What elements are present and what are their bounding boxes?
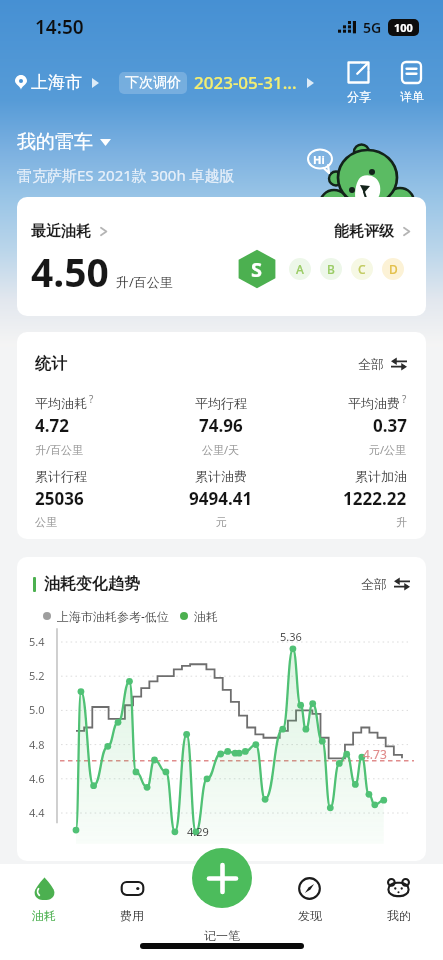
button[interactable]: 我的 xyxy=(354,875,443,925)
staticText: 4.8 xyxy=(29,737,45,752)
staticText: 5G xyxy=(363,18,382,37)
staticText: 0.37 xyxy=(373,414,407,437)
staticText: 元/公里 xyxy=(369,442,407,457)
staticText: S xyxy=(251,256,263,283)
staticText: 雷克萨斯ES 2021款 300h 卓越版 xyxy=(17,165,235,185)
button[interactable]: 最近油耗 xyxy=(17,197,426,316)
button[interactable]: 我的雷车 xyxy=(17,130,111,154)
button[interactable]: 发现 xyxy=(265,875,354,925)
staticText: 2023-05-31... xyxy=(194,71,297,94)
button[interactable]: 全部 xyxy=(361,576,410,592)
staticText: 记一笔 xyxy=(204,928,240,943)
staticText: 最近油耗 xyxy=(31,222,91,241)
staticText: 全部 xyxy=(361,576,387,592)
staticText: 4.29 xyxy=(187,824,209,839)
staticText: 下次调价 xyxy=(125,74,181,92)
staticText: 费用 xyxy=(120,908,144,923)
staticText: 统计 xyxy=(35,354,67,374)
staticText: 5.0 xyxy=(29,702,45,717)
staticText: 累计油费 xyxy=(195,468,247,484)
staticText: B xyxy=(327,261,335,277)
staticText: 25036 xyxy=(35,487,84,510)
staticText: D xyxy=(389,261,398,277)
staticText: 74.96 xyxy=(199,414,243,437)
staticText: 5.4 xyxy=(29,634,45,649)
button[interactable]: Details xyxy=(394,58,429,106)
staticText: 升/百公里 xyxy=(116,273,173,291)
button[interactable]: 油耗 xyxy=(0,875,88,925)
button[interactable]: Share xyxy=(341,58,376,106)
button[interactable]: 上海市 xyxy=(15,68,99,97)
staticText: Hi xyxy=(313,152,325,167)
staticText: 分享 xyxy=(347,89,371,104)
staticText: 累计行程 xyxy=(35,468,87,484)
staticText: 14:50 xyxy=(35,14,84,40)
staticText: 平均油费 xyxy=(348,395,400,411)
staticText: A xyxy=(296,261,304,277)
staticText: 平均行程 xyxy=(195,395,247,411)
staticText: 元 xyxy=(216,515,227,529)
button[interactable]: 费用 xyxy=(88,875,176,925)
staticText: 我的雷车 xyxy=(17,130,93,154)
staticText: 全部 xyxy=(358,356,384,372)
button[interactable]: Add record xyxy=(192,848,252,908)
staticText: 4.73 xyxy=(363,746,387,762)
staticText: 4.50 xyxy=(31,245,109,298)
button[interactable]: 下次调价 xyxy=(119,71,314,94)
staticText: 平均油耗 xyxy=(35,395,87,411)
staticText: 我的 xyxy=(387,908,411,923)
staticText: 4.6 xyxy=(29,771,45,786)
staticText: C xyxy=(358,261,366,277)
staticText: 油耗变化趋势 xyxy=(44,574,140,594)
staticText: 公里 xyxy=(35,515,57,529)
staticText: 能耗评级 xyxy=(334,222,394,241)
staticText: 上海市油耗参考-低位 xyxy=(57,608,169,624)
staticText: 累计加油 xyxy=(355,468,407,484)
staticText: 公里/天 xyxy=(202,442,240,457)
staticText: ? xyxy=(402,392,407,406)
staticText: 详单 xyxy=(400,89,424,104)
staticText: 发现 xyxy=(298,908,322,923)
staticText: 油耗 xyxy=(32,908,56,923)
staticText: 升/百公里 xyxy=(35,442,84,457)
staticText: 5.36 xyxy=(280,629,302,644)
staticText: 5.2 xyxy=(29,668,45,683)
staticText: 上海市 xyxy=(31,72,82,93)
staticText: 9494.41 xyxy=(189,487,253,510)
staticText: ? xyxy=(89,392,94,406)
staticText: 升 xyxy=(396,515,407,529)
staticText: 油耗 xyxy=(194,609,218,624)
staticText: 1222.22 xyxy=(343,487,407,510)
staticText: 4.4 xyxy=(29,805,45,820)
button[interactable]: 全部 xyxy=(358,356,407,372)
staticText: 100 xyxy=(394,20,413,35)
staticText: 4.72 xyxy=(35,414,69,437)
